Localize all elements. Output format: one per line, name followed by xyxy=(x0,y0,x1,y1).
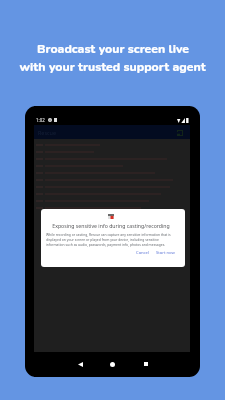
staticText: 1:02 xyxy=(36,117,45,123)
staticText: Rescue xyxy=(38,129,56,136)
button[interactable]: Recent apps xyxy=(138,356,154,372)
staticText: Broadcast your screen live xyxy=(37,41,189,58)
staticText: Exposing sensitive info during casting/r… xyxy=(46,222,176,229)
staticText: Start now xyxy=(156,250,175,256)
staticText: While recording or casting, Rescue can c… xyxy=(46,232,172,247)
button[interactable]: Cast screen xyxy=(175,128,184,137)
button[interactable]: Back xyxy=(72,356,88,372)
button[interactable]: Cancel xyxy=(135,250,151,256)
button[interactable]: Start now xyxy=(155,250,176,256)
staticText: with your trusted support agent xyxy=(19,59,206,76)
button[interactable]: Home xyxy=(104,356,120,372)
staticText: Cancel xyxy=(136,250,150,256)
